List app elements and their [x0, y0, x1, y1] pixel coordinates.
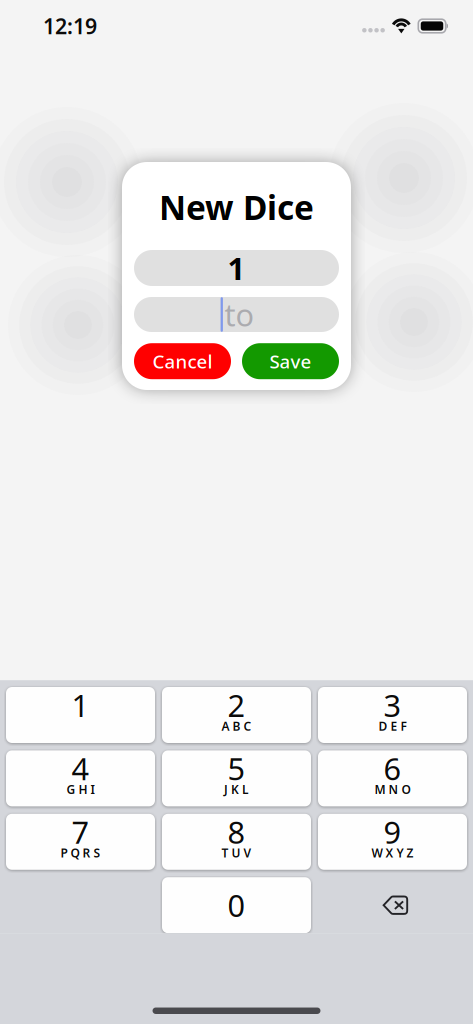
button[interactable]: Save [242, 343, 339, 379]
staticText: G H I [66, 781, 94, 797]
staticText: Cancel [152, 349, 212, 374]
button[interactable]: 0 [162, 877, 311, 933]
staticText: 2 [227, 685, 245, 725]
button[interactable]: 3 [318, 687, 467, 743]
staticText: 4 [71, 748, 89, 789]
staticText: 1 [227, 248, 245, 288]
button[interactable]: 7 [6, 814, 155, 870]
staticText: P Q R S [60, 845, 100, 861]
button[interactable]: 5 [162, 750, 311, 806]
staticText: 1 [71, 685, 89, 725]
button[interactable]: 2 [162, 687, 311, 743]
staticText: M N O [374, 781, 410, 797]
button[interactable]: 4 [6, 750, 155, 806]
staticText: 3 [383, 685, 401, 725]
staticText: 0 [227, 885, 245, 925]
staticText: A B C [221, 718, 251, 734]
staticText: Save [269, 349, 311, 374]
staticText: D E F [378, 718, 406, 734]
button[interactable]: Cancel [134, 343, 231, 379]
staticText: 12:19 [43, 12, 97, 40]
button[interactable]: 6 [318, 750, 467, 806]
staticText: 9 [383, 811, 401, 852]
staticText: T U V [221, 845, 251, 861]
staticText: 5 [227, 748, 245, 789]
staticText: W X Y Z [371, 845, 413, 861]
staticText: 7 [71, 811, 89, 852]
button[interactable]: 8 [162, 814, 311, 870]
button[interactable]: Delete [318, 877, 467, 933]
staticText: to [224, 294, 254, 335]
staticText: J K L [224, 781, 249, 797]
button[interactable]: 1 [6, 687, 155, 743]
staticText: 8 [227, 811, 245, 852]
staticText: 6 [383, 748, 401, 789]
staticText: New Dice [159, 185, 314, 229]
button[interactable]: 9 [318, 814, 467, 870]
